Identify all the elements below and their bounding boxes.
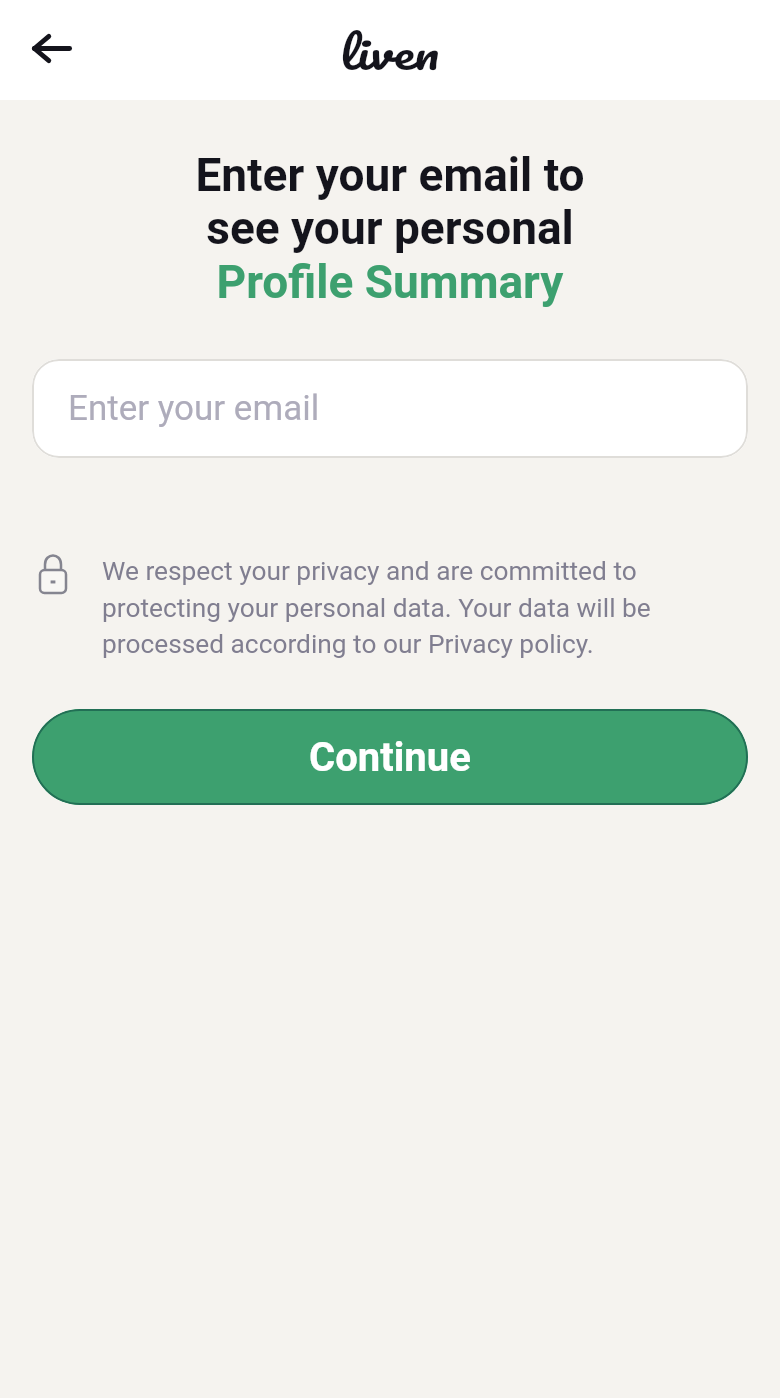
button[interactable]: Enter your email xyxy=(32,359,748,458)
staticText: liven xyxy=(340,15,440,88)
staticText: Enter your email to see your personal Pr… xyxy=(0,148,780,310)
button[interactable]: Continue xyxy=(32,709,748,805)
staticText: Enter your email xyxy=(68,388,320,429)
staticText: We respect your privacy and are committe… xyxy=(102,556,672,659)
button[interactable]: Back xyxy=(10,6,94,90)
staticText: Continue xyxy=(309,734,471,781)
